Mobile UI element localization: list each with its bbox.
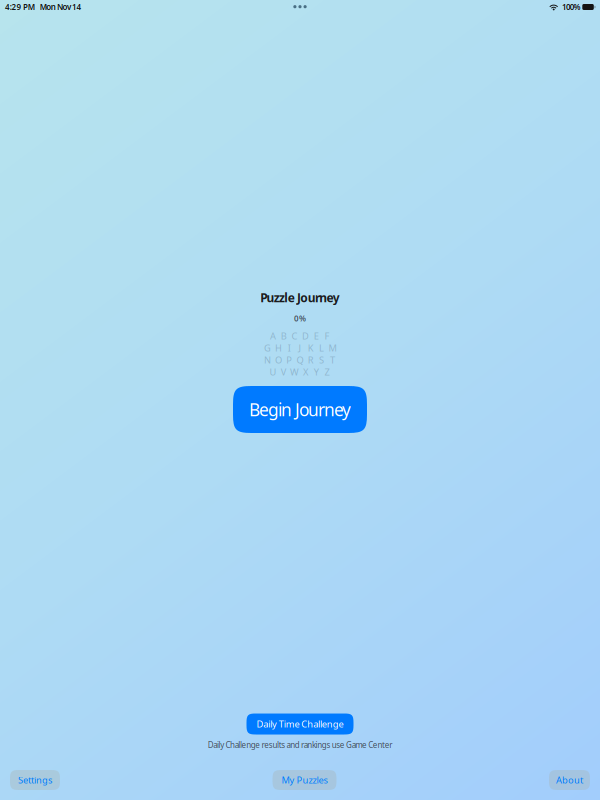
- staticText: Daily Time Challenge: [256, 718, 343, 730]
- staticText: D: [302, 330, 309, 342]
- staticText: G: [264, 342, 271, 354]
- staticText: Daily Challenge results and rankings use…: [208, 740, 392, 750]
- button[interactable]: Settings: [10, 770, 60, 790]
- staticText: J: [298, 342, 301, 354]
- staticText: Y: [314, 366, 319, 378]
- staticText: Z: [324, 366, 329, 378]
- staticText: M: [328, 342, 336, 354]
- button[interactable]: Begin: [233, 386, 367, 433]
- staticText: 4:29 PM: [5, 2, 35, 12]
- staticText: Nov: [57, 2, 71, 12]
- staticText: K: [308, 342, 314, 354]
- staticText: U: [269, 366, 276, 378]
- button[interactable]: About: [549, 770, 590, 790]
- staticText: Journey: [297, 289, 340, 305]
- staticText: X: [303, 366, 308, 378]
- staticText: Puzzle: [260, 289, 295, 305]
- staticText: Q: [296, 354, 303, 366]
- staticText: T: [330, 354, 335, 366]
- staticText: 100%: [562, 2, 580, 12]
- staticText: Begin: [249, 398, 292, 421]
- staticText: V: [281, 366, 287, 378]
- staticText: L: [319, 342, 324, 354]
- staticText: B: [281, 330, 287, 342]
- staticText: 14: [72, 2, 81, 12]
- staticText: W: [290, 366, 299, 378]
- staticText: C: [292, 330, 298, 342]
- staticText: H: [275, 342, 282, 354]
- staticText: P: [286, 354, 292, 366]
- button[interactable]: My Puzzles: [272, 770, 336, 790]
- staticText: My Puzzles: [281, 774, 327, 786]
- staticText: 0%: [294, 313, 306, 324]
- staticText: S: [319, 354, 324, 366]
- staticText: I: [288, 342, 291, 354]
- staticText: Mon: [40, 2, 56, 12]
- staticText: E: [314, 330, 319, 342]
- staticText: Settings: [18, 774, 52, 786]
- staticText: A: [270, 330, 276, 342]
- staticText: Journey: [295, 398, 351, 421]
- staticText: N: [264, 354, 271, 366]
- staticText: O: [275, 354, 282, 366]
- button[interactable]: Daily Time Challenge: [246, 713, 353, 734]
- staticText: F: [324, 330, 329, 342]
- staticText: R: [308, 354, 314, 366]
- staticText: About: [556, 774, 583, 786]
